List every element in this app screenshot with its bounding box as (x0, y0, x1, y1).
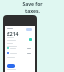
button[interactable]: Add (26, 28, 32, 31)
staticText: Save for (22, 1, 43, 8)
staticText: £214 (7, 31, 19, 38)
staticText: taxes. (25, 8, 40, 15)
button[interactable]: Save (7, 64, 15, 68)
button[interactable]: Phone preview (3, 15, 37, 72)
